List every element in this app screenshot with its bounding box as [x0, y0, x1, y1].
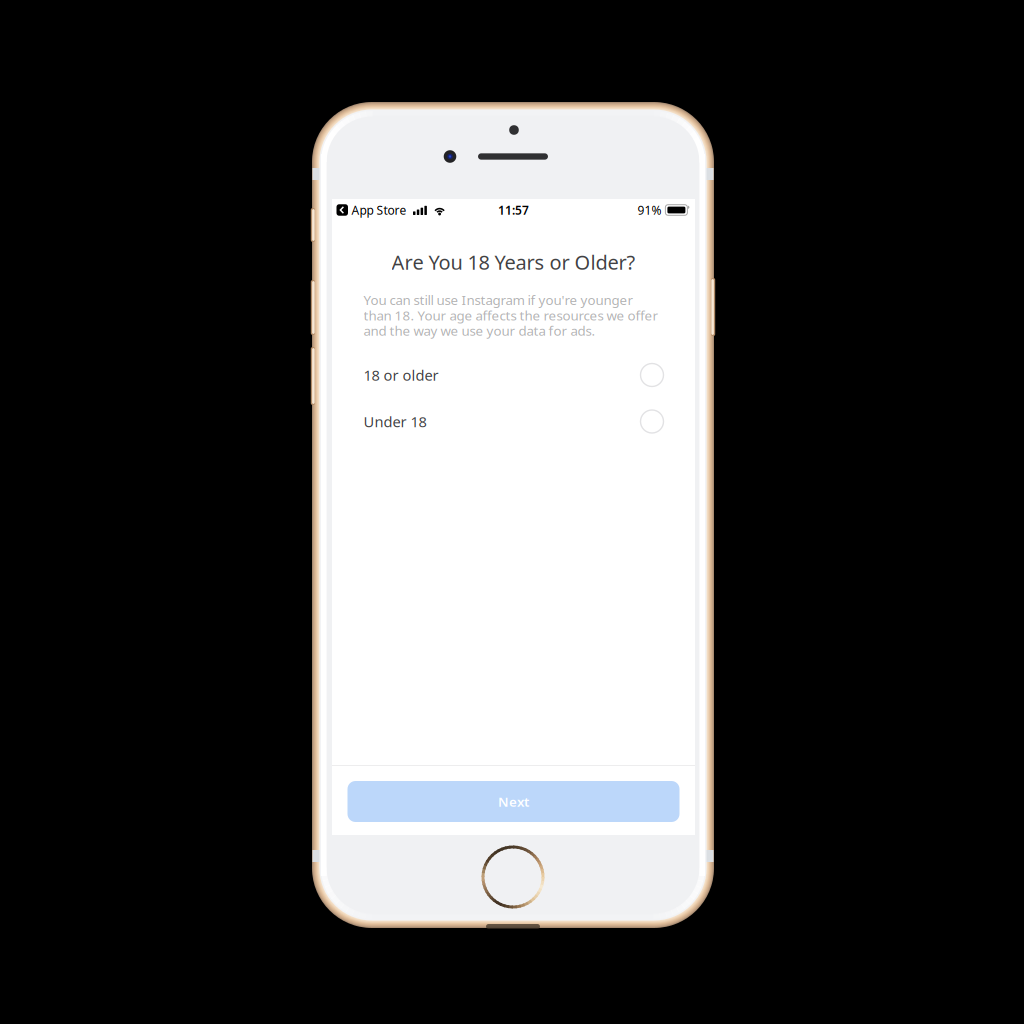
staticText: Are You 18 Years or Older? — [391, 249, 635, 275]
button[interactable]: App Store — [336, 202, 406, 218]
button[interactable]: Home — [479, 843, 547, 911]
button[interactable]: Under 18 — [332, 398, 695, 444]
staticText: 91% — [637, 202, 661, 218]
staticText: You can still use Instagram if you're yo… — [363, 291, 658, 339]
staticText: 11:57 — [498, 202, 529, 218]
staticText: Under 18 — [363, 412, 426, 431]
staticText: Next — [498, 793, 529, 810]
button[interactable]: 18 or older — [332, 352, 695, 398]
staticText: App Store — [351, 202, 406, 218]
button[interactable]: Next — [347, 781, 679, 822]
staticText: 18 or older — [363, 365, 438, 385]
